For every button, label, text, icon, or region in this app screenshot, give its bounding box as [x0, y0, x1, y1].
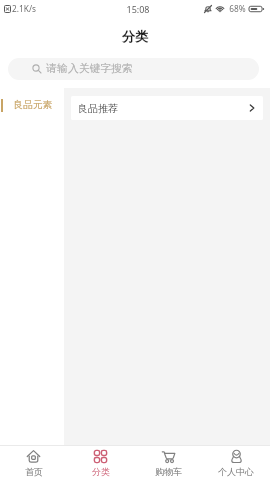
staticText: 首页	[25, 466, 43, 477]
staticText: 个人中心	[218, 466, 254, 477]
button[interactable]: Home	[0, 446, 67, 480]
staticText: 请输入关键字搜索	[46, 62, 133, 76]
staticText: 2.1K/s	[12, 3, 36, 14]
staticText: 分类	[122, 28, 148, 44]
staticText: 良品元素	[13, 99, 53, 111]
button[interactable]: Cart	[134, 446, 202, 480]
button[interactable]: 良品推荐	[71, 96, 263, 120]
staticText: 良品推荐	[78, 102, 118, 115]
button[interactable]: Profile	[202, 446, 270, 480]
staticText: 68%	[229, 3, 246, 14]
staticText: 分类	[92, 466, 110, 477]
button[interactable]: 请输入关键字搜索	[8, 58, 259, 80]
button[interactable]: Categories	[67, 446, 134, 480]
staticText: 购物车	[155, 466, 182, 477]
staticText: 15:08	[126, 3, 150, 15]
button[interactable]: 良品元素	[0, 94, 64, 116]
